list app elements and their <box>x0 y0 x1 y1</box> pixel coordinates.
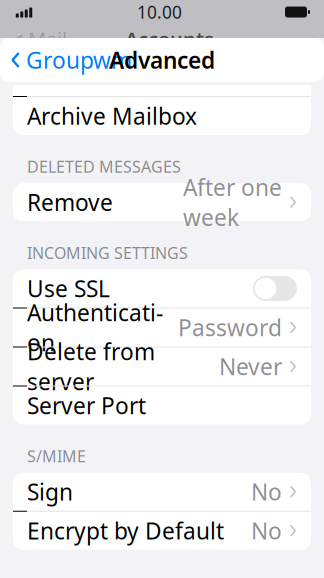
button[interactable]: Server Port <box>13 386 311 424</box>
staticText: 10.00 <box>137 0 182 23</box>
staticText: After one week <box>183 172 282 232</box>
staticText: Password <box>178 312 282 342</box>
staticText: Sign <box>27 477 73 507</box>
staticText: Remove <box>27 187 113 217</box>
button[interactable]: Remove <box>13 183 311 221</box>
staticText: No <box>251 516 282 546</box>
staticText: < <box>12 26 23 52</box>
button[interactable]: Groupwm <box>0 37 132 83</box>
staticText: Authentication <box>27 297 163 358</box>
staticText: No <box>251 477 282 507</box>
button[interactable]: Use SSL <box>253 276 297 301</box>
staticText: Mail <box>23 26 67 52</box>
staticText: Encrypt by Default <box>27 516 224 546</box>
button[interactable]: Authentication <box>13 308 311 346</box>
staticText: Delete from server <box>27 336 155 397</box>
staticText: Use SSL <box>27 273 110 303</box>
button[interactable]: Sign <box>13 473 311 511</box>
staticText: Advanced <box>109 45 215 75</box>
staticText: Groupwm <box>26 45 132 75</box>
staticText: INCOMING SETTINGS <box>27 242 188 263</box>
staticText: Accounts <box>125 26 214 52</box>
button[interactable]: Delete from server <box>13 347 311 385</box>
staticText: S/MIME <box>27 445 86 467</box>
staticText: Never <box>219 351 282 381</box>
button[interactable]: Encrypt by Default <box>13 512 311 550</box>
staticText: DELETED MESSAGES <box>27 156 181 177</box>
staticText: Server Port <box>27 390 146 420</box>
staticText: Archive Mailbox <box>27 101 197 131</box>
button[interactable]: Archive Mailbox <box>13 97 311 135</box>
